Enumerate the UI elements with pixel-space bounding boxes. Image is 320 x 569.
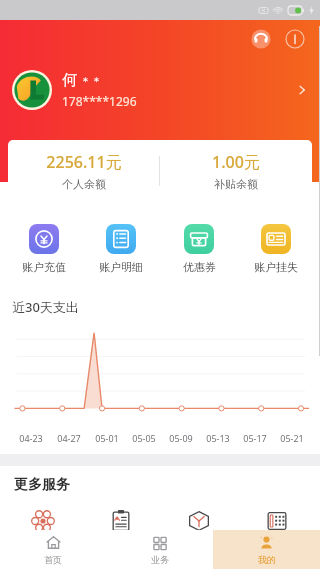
button[interactable]: 首页	[0, 530, 106, 569]
staticText: 2256.11元	[46, 151, 122, 173]
button[interactable]: 健康报告	[86, 508, 156, 520]
button[interactable]: 账户挂失	[243, 224, 309, 274]
staticText: 何	[62, 71, 77, 90]
button[interactable]: Information	[284, 28, 306, 50]
button[interactable]: 就餐情况	[242, 508, 312, 520]
button[interactable]: 膳食平衡	[164, 508, 234, 520]
staticText: 我的	[258, 554, 276, 565]
staticText: 05-13	[206, 432, 230, 444]
staticText: 个人余额	[62, 177, 106, 191]
staticText: 补贴余额	[214, 177, 258, 191]
button[interactable]: 账户明细	[88, 224, 154, 274]
button[interactable]: 个人健康	[8, 508, 78, 520]
button[interactable]: 业务	[106, 530, 213, 569]
staticText: 04-23	[19, 432, 43, 444]
staticText: 05-21	[280, 432, 304, 444]
staticText: 账户挂失	[254, 260, 298, 274]
staticText: 05-09	[169, 432, 193, 444]
staticText: 账户充值	[22, 260, 66, 274]
button[interactable]: 2256.11元	[8, 140, 159, 202]
staticText: ＊＊	[80, 74, 102, 88]
staticText: 05-01	[95, 432, 119, 444]
staticText: 05-05	[132, 432, 156, 444]
button[interactable]: 1.00元	[160, 140, 312, 202]
button[interactable]: 账户充值	[11, 224, 77, 274]
staticText: 05-17	[243, 432, 267, 444]
staticText: 业务	[151, 554, 169, 565]
button[interactable]: 何	[0, 62, 320, 118]
staticText: 04-27	[57, 432, 81, 444]
staticText: 优惠券	[183, 260, 216, 274]
staticText: 首页	[44, 554, 62, 565]
staticText: 近30天支出	[12, 298, 79, 316]
button[interactable]: 优惠券	[166, 224, 232, 274]
staticText: 1.00元	[212, 151, 260, 173]
button[interactable]: Customer service	[250, 28, 272, 50]
staticText: 账户明细	[99, 260, 143, 274]
button[interactable]: 我的	[213, 530, 320, 569]
staticText: 更多服务	[14, 476, 70, 494]
staticText: 178****1296	[62, 93, 137, 109]
